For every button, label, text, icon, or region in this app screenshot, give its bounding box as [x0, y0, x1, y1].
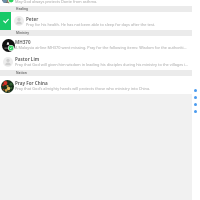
button[interactable]: Pastor Lim	[0, 53, 192, 70]
staticText: Pastor Lim	[15, 56, 40, 62]
staticText: Pray that God will given him wisdom in l…	[15, 62, 190, 67]
button[interactable]: May God always protects Dante from asthm…	[0, 0, 192, 6]
button[interactable]: Peter	[11, 12, 200, 30]
staticText: MH370	[15, 39, 31, 45]
button[interactable]: Mark as answered	[0, 12, 11, 30]
staticText: Healing	[16, 7, 29, 11]
staticText: A Malaysia airline MH370 went missing. P…	[15, 45, 187, 50]
staticText: Ministry	[16, 31, 30, 35]
staticText: Pray For China	[15, 80, 48, 86]
staticText: Nation	[16, 71, 27, 75]
staticText: May God always protects Dante from asthm…	[15, 0, 98, 4]
staticText: Pray for his health. He has not been abl…	[26, 22, 156, 27]
button[interactable]: MH370	[0, 36, 192, 53]
staticText: Peter	[26, 16, 39, 22]
button[interactable]: Pray For China	[0, 76, 192, 95]
staticText: Pray that God's almighty hands will prot…	[15, 86, 151, 91]
